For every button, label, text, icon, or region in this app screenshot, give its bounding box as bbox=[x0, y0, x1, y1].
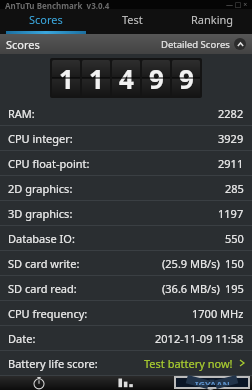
staticText: AnTuTu Benchmark v3.0.4 bbox=[5, 0, 110, 9]
staticText: (25.9 MB/s) bbox=[162, 256, 220, 271]
button[interactable]: Info bbox=[168, 376, 252, 390]
staticText: 3929 bbox=[218, 131, 244, 146]
button[interactable]: Ranking bbox=[172, 9, 252, 34]
staticText: 9 bbox=[179, 61, 194, 96]
button[interactable]: 3D graphics: bbox=[0, 201, 252, 225]
staticText: Ranking bbox=[191, 12, 234, 27]
staticText: CPU float-point: bbox=[8, 156, 90, 171]
staticText: Test bbox=[122, 12, 143, 27]
button[interactable]: Test bbox=[0, 376, 84, 390]
button[interactable]: Test bbox=[92, 9, 172, 34]
staticText: 2D graphics: bbox=[8, 181, 73, 196]
staticText: 2911 bbox=[218, 156, 244, 171]
staticText: (36.6 MB/s) bbox=[162, 281, 220, 296]
staticText: RAM: bbox=[8, 106, 35, 121]
button[interactable]: Scores bbox=[84, 376, 168, 390]
staticText: 1 bbox=[89, 61, 104, 96]
button[interactable]: SD card read: bbox=[0, 276, 252, 300]
staticText: 1197 bbox=[218, 206, 244, 221]
staticText: CPU frequency: bbox=[8, 306, 88, 321]
staticText: 285 bbox=[225, 181, 244, 196]
staticText: 2282 bbox=[218, 106, 244, 121]
button[interactable]: Scores bbox=[0, 34, 252, 54]
staticText: CPU integer: bbox=[8, 131, 73, 146]
staticText: 150 bbox=[225, 256, 244, 271]
button[interactable]: CPU float-point: bbox=[0, 151, 252, 175]
staticText: SD card write: bbox=[8, 256, 80, 271]
button[interactable]: RAM: bbox=[0, 101, 252, 125]
button[interactable]: Scores bbox=[0, 9, 92, 34]
staticText: 550 bbox=[225, 231, 244, 246]
staticText: Date: bbox=[8, 331, 36, 346]
button[interactable]: 2D graphics: bbox=[0, 176, 252, 200]
staticText: SD card read: bbox=[8, 281, 77, 296]
staticText: 3D graphics: bbox=[8, 206, 73, 221]
button[interactable]: Battery life score: bbox=[0, 351, 252, 375]
staticText: 1700 MHz bbox=[192, 306, 244, 321]
staticText: 2012-11-09 11:58 bbox=[155, 331, 244, 346]
staticText: — □ × bbox=[226, 0, 248, 9]
button[interactable]: Date: bbox=[0, 326, 252, 350]
staticText: Scores bbox=[6, 37, 40, 52]
staticText: 1 bbox=[59, 61, 74, 96]
staticText: 195 bbox=[225, 281, 244, 296]
staticText: i bbox=[209, 376, 213, 390]
staticText: Battery life score: bbox=[8, 356, 98, 371]
staticText: IGYAAN bbox=[195, 378, 230, 385]
staticText: Detailed Scores bbox=[161, 38, 230, 51]
button[interactable]: CPU integer: bbox=[0, 126, 252, 150]
button[interactable]: Database IO: bbox=[0, 226, 252, 250]
staticText: Database IO: bbox=[8, 231, 75, 246]
staticText: 4 bbox=[119, 61, 134, 96]
button[interactable]: CPU frequency: bbox=[0, 301, 252, 325]
staticText: 9 bbox=[149, 61, 164, 96]
button[interactable]: SD card write: bbox=[0, 251, 252, 275]
staticText: Scores bbox=[29, 12, 63, 27]
staticText: Test battery now! bbox=[144, 356, 233, 371]
